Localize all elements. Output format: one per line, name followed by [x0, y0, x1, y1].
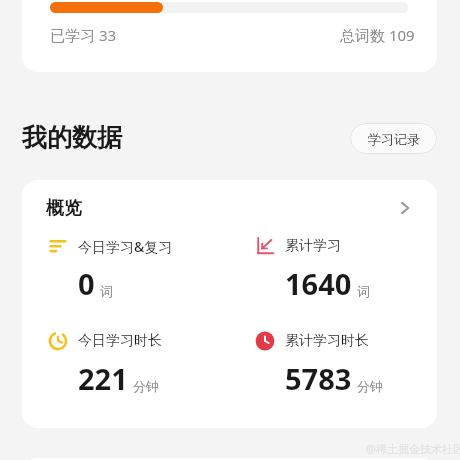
- button[interactable]: 今日学习时长: [48, 331, 228, 398]
- button[interactable]: 学习记录: [350, 123, 437, 154]
- staticText: 概览: [46, 197, 82, 220]
- staticText: 221: [78, 359, 128, 398]
- button[interactable]: 已学习 33: [22, 0, 437, 72]
- staticText: 0: [78, 264, 95, 303]
- other: 累计学习时长: [255, 331, 275, 351]
- staticText: 词: [357, 283, 370, 299]
- button[interactable]: 今日学习&复习: [48, 236, 228, 303]
- staticText: @稀土掘金技术社区: [366, 441, 460, 456]
- button[interactable]: 累计学习时长: [255, 331, 435, 398]
- staticText: 今日学习&复习: [78, 237, 173, 256]
- staticText: 我的数据: [22, 122, 122, 153]
- staticText: 总词数 109: [340, 25, 415, 45]
- staticText: 分钟: [357, 378, 383, 394]
- staticText: 分钟: [133, 378, 159, 394]
- staticText: 5783: [285, 359, 352, 398]
- staticText: 1640: [285, 264, 352, 303]
- staticText: 词: [100, 283, 113, 299]
- other: 累计学习: [255, 236, 275, 256]
- staticText: 学习记录: [368, 131, 420, 147]
- staticText: 已学习 33: [50, 25, 117, 45]
- other: 今日学习时长: [48, 331, 68, 351]
- button[interactable]: 概览: [22, 180, 437, 236]
- staticText: 今日学习时长: [78, 332, 162, 350]
- button[interactable]: 累计学习: [255, 236, 435, 303]
- other: 今日学习&复习: [48, 236, 68, 256]
- staticText: 累计学习: [285, 237, 341, 255]
- staticText: 累计学习时长: [285, 332, 369, 350]
